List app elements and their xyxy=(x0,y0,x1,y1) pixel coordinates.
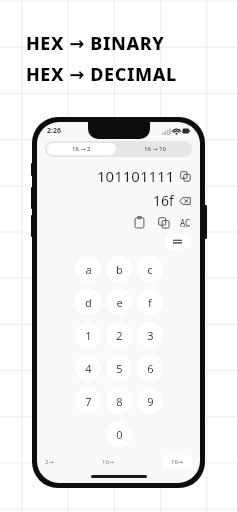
staticText: f xyxy=(148,295,152,310)
button[interactable]: Paste xyxy=(133,216,146,229)
button[interactable]: c xyxy=(137,256,163,282)
staticText: e xyxy=(116,295,123,310)
staticText: a xyxy=(85,262,92,277)
button[interactable]: a xyxy=(75,256,101,282)
button[interactable]: 16→ xyxy=(162,455,192,469)
button[interactable]: 7 xyxy=(75,388,101,414)
button[interactable]: 4 xyxy=(75,355,101,381)
staticText: 1 xyxy=(85,328,92,343)
staticText: 2:26 xyxy=(47,126,61,136)
staticText: 16 → 2 xyxy=(72,145,91,153)
staticText: 101101111 xyxy=(97,166,175,186)
button[interactable]: 1 xyxy=(75,322,101,348)
button[interactable]: 2 xyxy=(106,322,132,348)
staticText: 5 xyxy=(116,361,123,376)
button[interactable]: 16 → 10 xyxy=(118,141,192,157)
staticText: 6 xyxy=(147,361,154,376)
staticText: 0 xyxy=(116,427,123,442)
staticText: 10→ xyxy=(102,458,114,466)
staticText: HEX → BINARY xyxy=(26,31,165,56)
button[interactable]: 5 xyxy=(106,355,132,381)
staticText: 4 xyxy=(85,361,92,376)
staticText: 2 xyxy=(116,328,123,343)
staticText: HEX → DECIMAL xyxy=(26,62,177,87)
staticText: c xyxy=(147,262,153,277)
button[interactable]: b xyxy=(106,256,132,282)
button[interactable]: 9 xyxy=(137,388,163,414)
staticText: 16 → 10 xyxy=(144,145,166,153)
staticText: 3 xyxy=(147,328,154,343)
staticText: 16f xyxy=(153,191,174,210)
button[interactable]: Copy xyxy=(158,217,170,229)
button[interactable]: 16 → 2 xyxy=(47,143,116,155)
button[interactable]: 3 xyxy=(137,322,163,348)
button[interactable]: 8 xyxy=(106,388,132,414)
staticText: 9 xyxy=(147,394,154,409)
staticText: 16→ xyxy=(171,458,183,466)
button[interactable]: d xyxy=(75,289,101,315)
staticText: d xyxy=(85,295,92,310)
button[interactable]: Copy result xyxy=(180,171,191,182)
staticText: b xyxy=(116,262,123,277)
staticText: 2→ xyxy=(45,458,54,466)
button[interactable]: e xyxy=(106,289,132,315)
button[interactable]: AC xyxy=(180,217,191,228)
button[interactable]: 6 xyxy=(137,355,163,381)
staticText: 8 xyxy=(116,394,123,409)
staticText: 7 xyxy=(85,394,92,409)
button[interactable]: 0 xyxy=(106,421,132,447)
staticText: AC xyxy=(180,217,191,228)
button[interactable]: 2→ xyxy=(45,458,54,466)
button[interactable]: Backspace xyxy=(179,195,191,207)
button[interactable]: Menu xyxy=(164,234,191,249)
button[interactable]: f xyxy=(137,289,163,315)
button[interactable]: 10→ xyxy=(102,458,114,466)
